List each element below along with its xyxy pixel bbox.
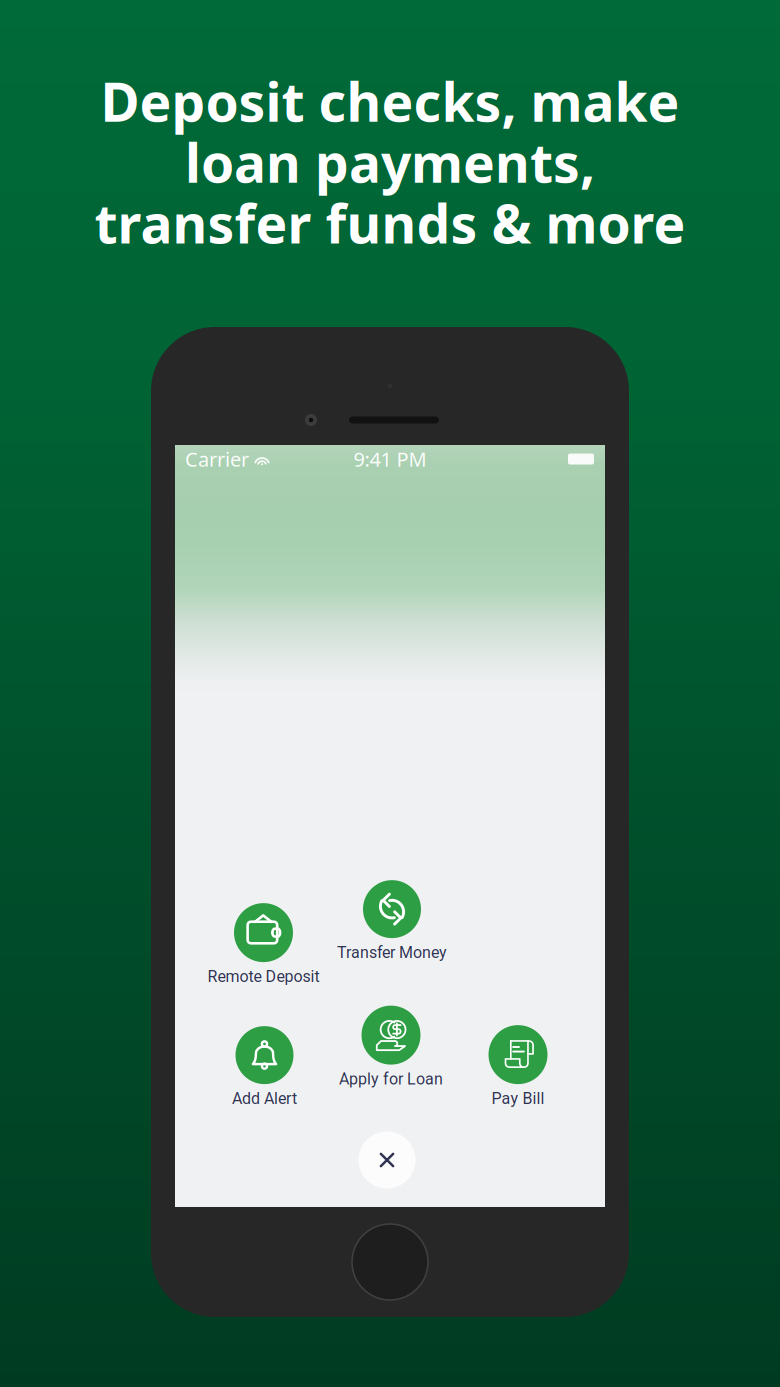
button[interactable]: Close: [358, 1131, 415, 1188]
staticText: loan payments,: [185, 127, 595, 197]
staticText: Pay Bill: [491, 1089, 544, 1108]
staticText: Add Alert: [232, 1089, 297, 1108]
staticText: transfer funds & more: [94, 187, 685, 258]
button[interactable]: Add Alert: [232, 1026, 297, 1108]
staticText: Carrier: [185, 446, 249, 472]
staticText: Deposit checks, make: [100, 66, 679, 137]
staticText: 9:41 PM: [353, 446, 426, 472]
staticText: Remote Deposit: [207, 967, 319, 986]
staticText: Transfer Money: [337, 943, 447, 962]
button[interactable]: Apply for Loan: [339, 1006, 443, 1088]
staticText: Apply for Loan: [339, 1070, 443, 1088]
button[interactable]: Pay Bill: [488, 1025, 547, 1108]
button[interactable]: Transfer Money: [337, 880, 447, 962]
button[interactable]: Remote Deposit: [207, 903, 319, 986]
